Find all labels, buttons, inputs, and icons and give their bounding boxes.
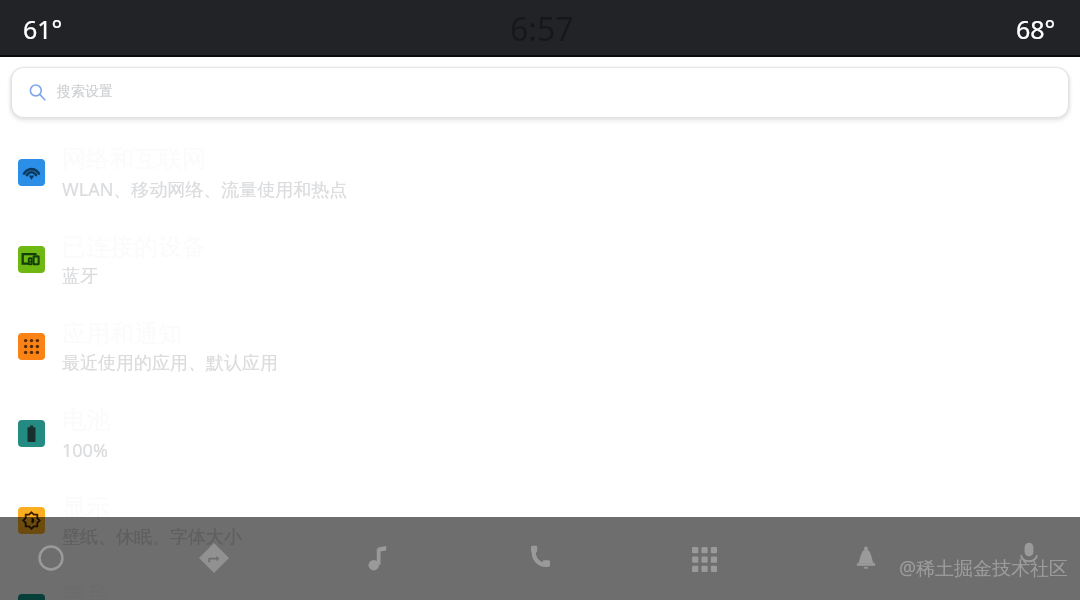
staticText: 壁纸、休眠、字体大小 xyxy=(62,526,242,549)
button[interactable]: Apps xyxy=(679,534,727,582)
staticText: 最近使用的应用、默认应用 xyxy=(62,352,278,375)
staticText: 蓝牙 xyxy=(62,265,98,288)
staticText: @稀土掘金技术社区 xyxy=(899,555,1069,581)
button[interactable]: 应用和通知 xyxy=(0,303,1080,390)
button[interactable]: Navigation xyxy=(190,534,238,582)
button[interactable]: Notifications xyxy=(842,534,890,582)
button[interactable]: 已连接的设备 xyxy=(0,216,1080,303)
button[interactable]: 显示 xyxy=(0,477,1080,564)
button[interactable]: 搜索设置 xyxy=(12,68,1068,117)
button[interactable]: 声音 xyxy=(0,564,1080,600)
button[interactable]: 网络和互联网 xyxy=(0,129,1080,216)
button[interactable]: Voice search xyxy=(1005,528,1053,576)
button[interactable]: Home xyxy=(27,534,75,582)
staticText: 61° xyxy=(23,12,63,46)
button[interactable]: Music xyxy=(353,534,401,582)
staticText: 100% xyxy=(62,438,108,463)
staticText: 显示 xyxy=(62,493,110,523)
staticText: 68° xyxy=(1016,12,1056,46)
staticText: WLAN、移动网络、流量使用和热点 xyxy=(62,177,348,202)
staticText: 6:57 xyxy=(510,7,574,51)
button[interactable]: 电池 xyxy=(0,390,1080,477)
button[interactable]: Phone xyxy=(516,533,564,581)
staticText: 搜索设置 xyxy=(57,83,113,101)
